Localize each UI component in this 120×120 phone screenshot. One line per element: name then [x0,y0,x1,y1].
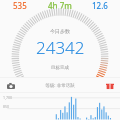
button[interactable]: 等级: 非常活跃 [45,82,75,88]
button[interactable]: Camera [5,80,16,91]
button[interactable]: 4h 7m [40,0,80,9]
staticText: 目标完成 [51,65,69,71]
staticText: 850 [3,104,10,109]
button[interactable]: 今日步数 [0,9,120,77]
staticText: 4h 7m [48,0,72,9]
staticText: 今日步数 [50,28,70,34]
button[interactable]: Rewards [104,80,115,91]
staticText: 1,700 [3,95,12,100]
staticText: 535 [13,0,27,9]
button[interactable]: 535 [0,0,40,9]
staticText: 24342 [36,36,85,59]
button[interactable]: 1,700 [0,93,120,120]
staticText: 12.6 [92,0,108,9]
staticText: 等级: 非常活跃 [45,82,75,88]
button[interactable]: 12.6 [80,0,120,9]
